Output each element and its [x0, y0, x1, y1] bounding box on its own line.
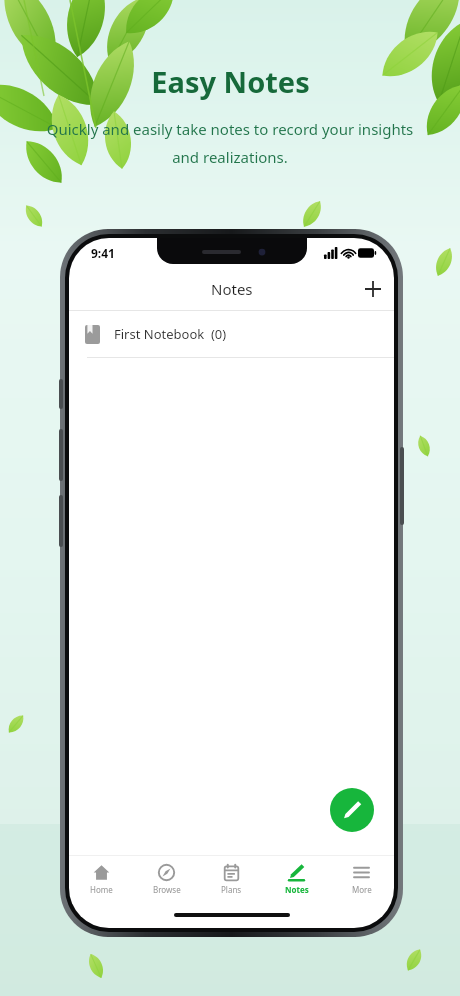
staticText: 9:41	[91, 245, 115, 261]
button[interactable]: Home	[69, 856, 134, 902]
staticText: Home	[90, 884, 113, 895]
staticText: More	[352, 884, 372, 895]
staticText: Notes	[285, 884, 309, 895]
button[interactable]: Add notebook	[352, 268, 394, 310]
staticText: Quickly and easily take notes to record …	[14, 119, 446, 167]
button[interactable]: First Notebook (0)	[69, 311, 394, 357]
button[interactable]: More	[329, 856, 394, 902]
staticText: First Notebook (0)	[114, 325, 227, 343]
button[interactable]: Browse	[134, 856, 199, 902]
button[interactable]: Plans	[199, 856, 264, 902]
button[interactable]: Notes	[264, 856, 329, 902]
button[interactable]: New note	[330, 788, 374, 832]
staticText: Plans	[221, 884, 242, 895]
staticText: Browse	[153, 884, 181, 895]
staticText: Notes	[211, 279, 253, 299]
staticText: Easy Notes	[151, 62, 310, 101]
